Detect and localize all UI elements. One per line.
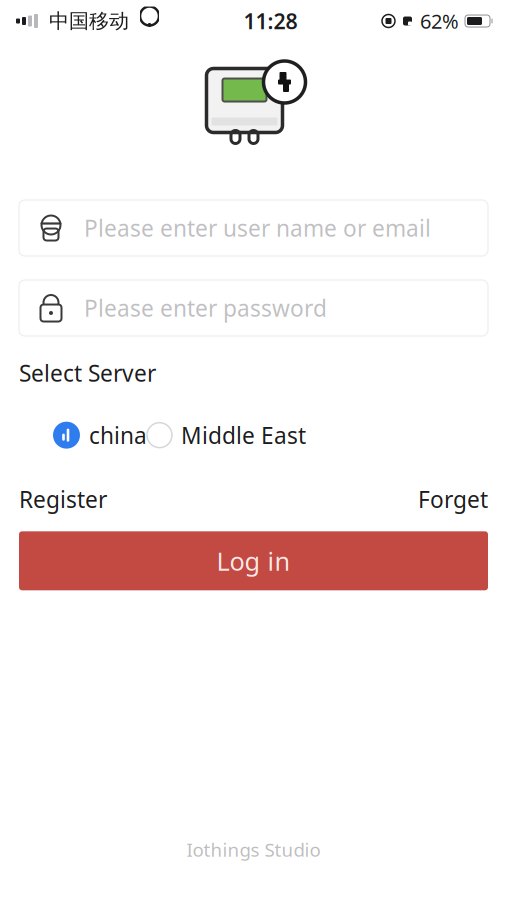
- staticText: china: [89, 420, 147, 450]
- button[interactable]: Log in: [19, 531, 488, 590]
- staticText: Please enter password: [84, 293, 327, 323]
- staticText: Log in: [216, 544, 290, 578]
- staticText: Iothings Studio: [186, 837, 320, 862]
- button[interactable]: Forget: [418, 484, 488, 514]
- staticText: 62%: [420, 8, 459, 34]
- staticText: 中国移动: [49, 9, 129, 33]
- button[interactable]: Register: [19, 484, 107, 514]
- staticText: Forget: [418, 484, 488, 514]
- staticText: Select Server: [19, 358, 156, 388]
- staticText: Middle East: [181, 420, 306, 450]
- button[interactable]: Middle East: [147, 420, 306, 450]
- staticText: 11:28: [243, 7, 297, 35]
- staticText: Please enter user name or email: [84, 213, 431, 243]
- button[interactable]: china: [53, 420, 147, 450]
- staticText: Register: [19, 484, 107, 514]
